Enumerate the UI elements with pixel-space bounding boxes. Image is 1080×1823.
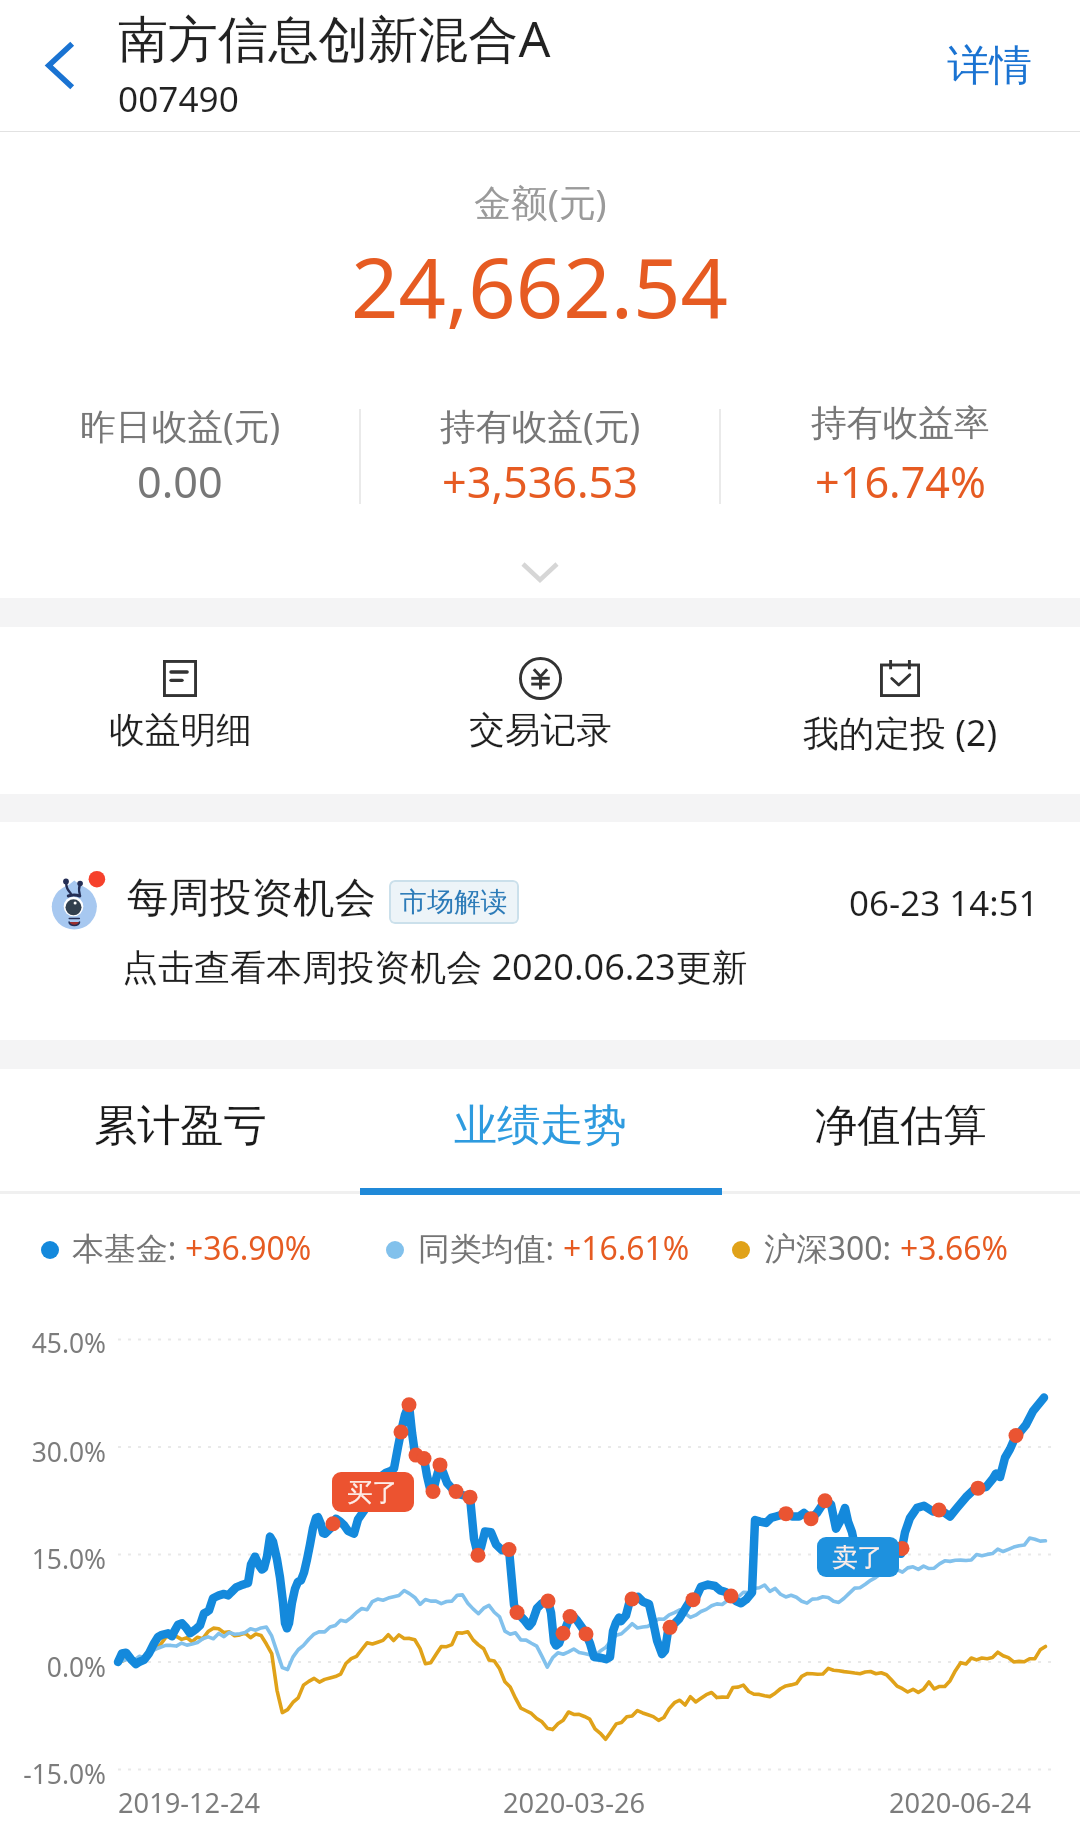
button[interactable]: 收益明细 — [0, 627, 360, 672]
staticText: 每周投资机会 — [127, 872, 377, 924]
staticText: 45.0% — [0, 1325, 106, 1361]
staticText: 30.0% — [0, 1434, 106, 1470]
staticText: 2019-12-24 — [118, 1784, 261, 1821]
staticText: 卖了 — [832, 1541, 884, 1573]
staticText: +3.66% — [900, 1226, 1009, 1269]
staticText: 06-23 14:51 — [849, 879, 1039, 927]
staticText: 收益明细 — [109, 708, 252, 753]
staticText: 15.0% — [0, 1541, 106, 1577]
staticText: 南方信息创新混合A — [118, 3, 551, 71]
staticText: 业绩走势 — [454, 1098, 627, 1150]
button[interactable]: 净值估算 — [720, 1098, 1080, 1150]
staticText: +3,536.53 — [442, 452, 639, 511]
button[interactable]: 业绩走势 — [360, 1098, 720, 1150]
staticText: 持有收益(元) — [440, 401, 641, 450]
staticText: 持有收益率 — [811, 401, 990, 446]
staticText: 累计盈亏 — [94, 1098, 267, 1150]
staticText: 007490 — [118, 74, 239, 122]
staticText: 本基金: — [72, 1226, 185, 1270]
button[interactable]: Back — [0, 5, 121, 126]
staticText: -15.0% — [0, 1756, 106, 1792]
staticText: 24,662.54 — [351, 229, 729, 342]
button[interactable]: 我的定投 (2) — [720, 627, 1080, 676]
staticText: 0.00 — [137, 452, 223, 511]
staticText: 2020-06-24 — [889, 1784, 1032, 1821]
staticText: 沪深300: — [764, 1226, 900, 1270]
staticText: 昨日收益(元) — [80, 401, 281, 450]
staticText: 点击查看本周投资机会 2020.06.23更新 — [122, 941, 748, 990]
button[interactable]: 交易记录 — [360, 627, 720, 672]
staticText: +16.61% — [563, 1226, 690, 1269]
button[interactable]: 每周投资机会 — [0, 822, 1080, 1040]
staticText: 买了 — [347, 1476, 399, 1508]
staticText: +36.90% — [185, 1226, 312, 1269]
staticText: 交易记录 — [469, 708, 612, 753]
staticText: 详情 — [947, 39, 1033, 93]
staticText: +16.74% — [815, 452, 986, 511]
staticText: 我的定投 (2) — [803, 708, 998, 757]
button[interactable]: 累计盈亏 — [0, 1098, 360, 1150]
staticText: 0.0% — [0, 1649, 106, 1685]
button[interactable]: 详情 — [900, 17, 1080, 115]
staticText: 净值估算 — [814, 1098, 987, 1150]
staticText: 市场解读 — [400, 885, 508, 919]
staticText: 金额(元) — [474, 177, 607, 227]
staticText: 同类均值: — [418, 1226, 563, 1270]
staticText: 2020-03-26 — [503, 1784, 646, 1821]
